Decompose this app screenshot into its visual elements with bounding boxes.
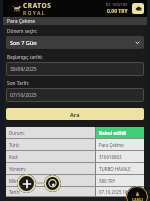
staticText: 07/10/2025 <box>10 92 37 99</box>
staticText: ROYAL <box>23 10 46 17</box>
staticText: 30/09/2025 <box>10 66 37 73</box>
staticText: Para Çekme <box>99 142 124 148</box>
staticText: Dönem seçin: <box>7 28 38 35</box>
staticText: Tarih: <box>9 189 21 195</box>
staticText: Yöntem: <box>9 166 26 172</box>
staticText: 07.10.2025 18:04 <box>99 189 134 195</box>
button[interactable]: Live support <box>126 186 148 201</box>
staticText: ID: 1052183 <box>106 2 128 7</box>
staticText: 580 TRY <box>99 178 116 184</box>
button[interactable]: Add <box>17 174 36 193</box>
button[interactable]: 07/10/2025 <box>6 88 144 102</box>
staticText: Para Çekme <box>7 18 36 25</box>
staticText: CRATOS <box>23 1 52 10</box>
button[interactable]: Ara <box>6 108 144 120</box>
button[interactable]: Wallet <box>132 3 144 14</box>
staticText: Durum: <box>9 130 25 136</box>
staticText: Son Tarih: <box>7 80 30 87</box>
staticText: TURBO HAVALE <box>99 166 131 172</box>
staticText: Ara <box>70 111 80 118</box>
button[interactable]: WhatsApp <box>44 175 61 192</box>
staticText: Miktar: <box>9 178 24 184</box>
staticText: Kod: <box>9 154 19 160</box>
staticText: CANLI <box>132 197 143 201</box>
button[interactable]: Son 7 Gün <box>6 36 144 49</box>
staticText: Son 7 Gün <box>10 39 37 46</box>
staticText: Kabul edildi <box>99 130 126 136</box>
staticText: 316916863 <box>99 154 122 160</box>
staticText: Başlangıç tarihi: <box>7 54 43 61</box>
button[interactable]: 30/09/2025 <box>6 62 144 76</box>
staticText: Türü: <box>9 142 20 148</box>
staticText: 0.00 TRY <box>107 8 128 15</box>
